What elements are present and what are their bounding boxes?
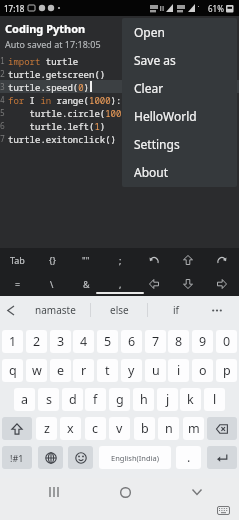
button[interactable]: else [91,296,147,324]
staticText: o [199,362,207,379]
staticText: 17:18 [4,3,25,14]
staticText: HelloWorld [134,108,197,124]
button[interactable]: q [2,359,23,382]
button[interactable]: 7 [145,330,166,353]
staticText: & [83,278,90,290]
button[interactable] [204,296,230,324]
button[interactable]: n [158,417,179,440]
button[interactable]: v [109,417,130,440]
button[interactable]: 0 [216,330,237,353]
button[interactable]: r [73,359,94,382]
button[interactable]: = [0,272,35,296]
staticText: 5 [104,333,112,350]
staticText: for I in range(1000): [8,94,122,106]
button[interactable]: l [204,388,225,411]
staticText: c [92,420,99,437]
staticText: 6 [0,120,8,131]
button[interactable]: e [50,359,71,382]
button[interactable]: 4 [73,330,94,353]
button[interactable]: t [97,359,118,382]
button[interactable]: 9 [192,330,213,353]
button[interactable]: !#1 [2,446,32,469]
button[interactable]: , [103,272,137,296]
button[interactable]: z [36,417,57,440]
button[interactable]: "" [69,248,103,272]
staticText: Tab [10,254,25,266]
button[interactable] [183,478,211,506]
button[interactable] [171,272,205,296]
button[interactable]: g [109,388,130,411]
staticText: y [128,362,135,379]
button[interactable] [40,478,68,506]
staticText: Auto saved at 17:18:05 [5,38,101,50]
button[interactable]: 8 [168,330,189,353]
staticText: 9 [199,333,207,350]
button[interactable]: ; [103,248,137,272]
button[interactable]: . [176,446,201,469]
button[interactable]: English(India) [99,446,171,469]
button[interactable] [137,272,171,296]
staticText: 61% [208,3,224,14]
button[interactable]: 1 [2,330,23,353]
button[interactable]: Tab [0,248,35,272]
button[interactable] [2,417,32,440]
button[interactable]: namaste [20,296,90,324]
button[interactable]: Open [122,18,237,46]
button[interactable]: d [62,388,83,411]
button[interactable]: & [69,272,103,296]
button[interactable] [207,417,237,440]
button[interactable] [68,446,93,469]
staticText: , [119,278,122,290]
button[interactable]: u [145,359,166,382]
button[interactable] [38,446,63,469]
button[interactable]: Save as [122,46,237,74]
button[interactable]: c [85,417,106,440]
staticText: ; [119,254,122,266]
button[interactable]: b [134,417,155,440]
button[interactable]: w [26,359,47,382]
staticText: 8 [175,333,183,350]
button[interactable]: m [183,417,204,440]
button[interactable]: Settings [122,130,237,158]
staticText: v [116,420,123,437]
button[interactable]: 5 [97,330,118,353]
staticText: 4 [0,94,8,105]
button[interactable] [0,296,20,324]
staticText: e [57,362,65,379]
staticText: m [188,420,200,437]
button[interactable]: k [180,388,201,411]
button[interactable]: 2 [26,330,47,353]
button[interactable] [111,478,139,506]
staticText: English(India) [111,453,159,463]
staticText: 4 [80,333,88,350]
staticText: About [134,164,169,180]
button[interactable]: {} [35,248,69,272]
button[interactable] [137,248,171,272]
button[interactable] [205,272,239,296]
button[interactable]: x [60,417,81,440]
staticText: n [165,420,173,437]
button[interactable]: About [122,158,237,186]
button[interactable]: j [157,388,178,411]
button[interactable]: a [14,388,35,411]
staticText: g [116,391,124,408]
button[interactable]: p [216,359,237,382]
button[interactable] [207,446,237,469]
staticText: turtle.circle(100 [8,107,122,119]
button[interactable] [205,248,239,272]
button[interactable]: o [192,359,213,382]
button[interactable]: 6 [121,330,142,353]
button[interactable] [171,248,205,272]
button[interactable]: if [148,296,204,324]
button[interactable]: y [121,359,142,382]
button[interactable]: HelloWorld [122,102,237,130]
button[interactable]: \ [35,272,69,296]
button[interactable]: 3 [50,330,71,353]
button[interactable]: f [85,388,106,411]
button[interactable]: i [168,359,189,382]
staticText: 7 [152,333,160,350]
button[interactable] [215,505,231,516]
button[interactable]: h [133,388,154,411]
button[interactable]: s [38,388,59,411]
button[interactable]: Clear [122,74,237,102]
